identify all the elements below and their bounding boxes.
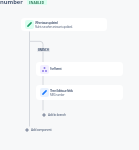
staticText: number (0, 0, 23, 6)
staticText: Rule is run when an issue is updated. (35, 25, 73, 29)
staticText: Add to branch (48, 113, 66, 117)
button[interactable]: Add component (25, 127, 52, 132)
staticText: MRC number (50, 93, 65, 97)
staticText: When issue updated (35, 21, 58, 25)
button[interactable]: Add to branch (42, 112, 66, 117)
button[interactable]: Then: Edit issue fields (36, 85, 123, 100)
button[interactable]: For Parent (36, 62, 123, 76)
button[interactable]: When issue updated (21, 18, 107, 31)
staticText: BRANCH (38, 48, 49, 52)
staticText: Add component (31, 128, 52, 132)
staticText: Then: Edit issue fields (50, 89, 73, 93)
staticText: For Parent (50, 67, 62, 71)
staticText: ENABLED (29, 0, 45, 4)
